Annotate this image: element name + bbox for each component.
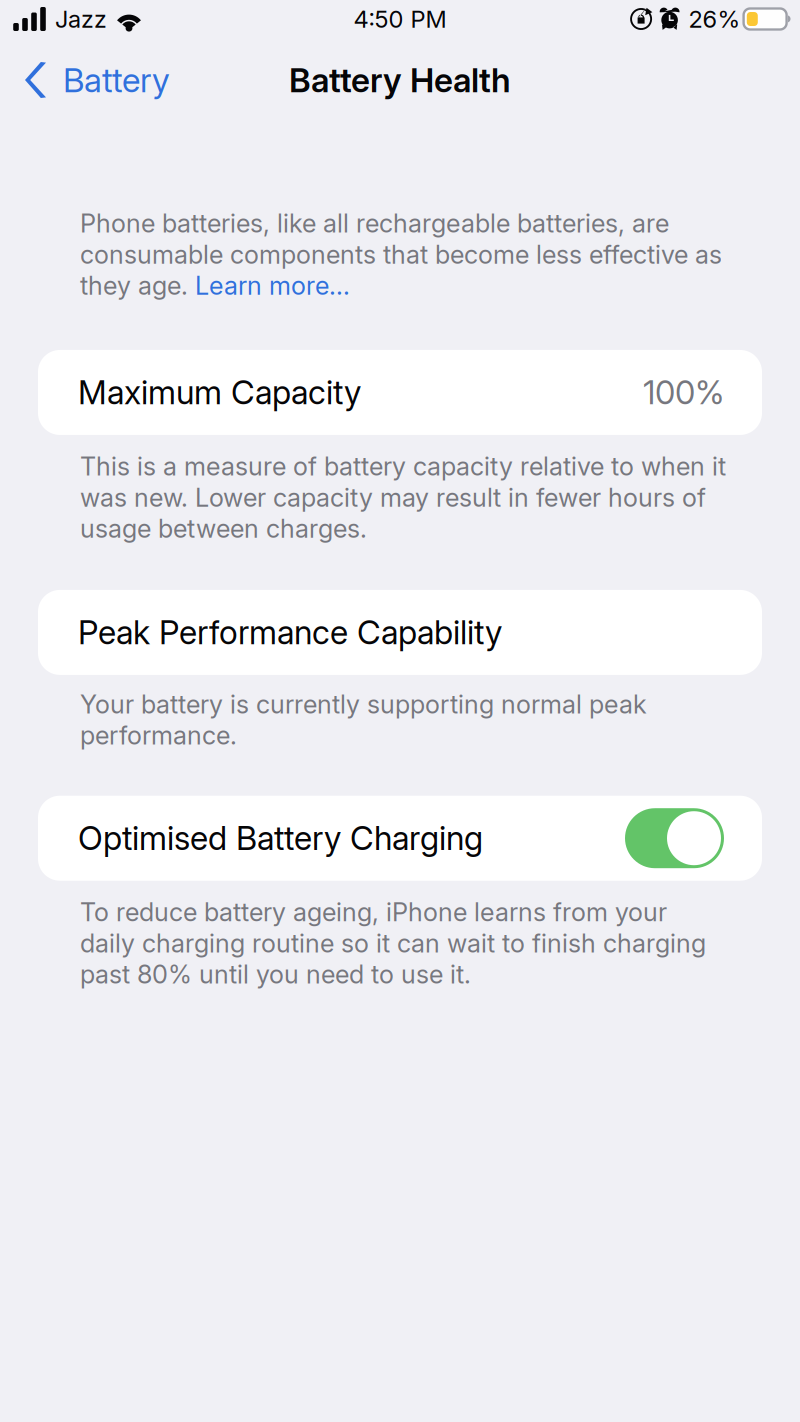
button[interactable]: Peak Performance Capability (0, 590, 800, 675)
staticText: Maximum Capacity (78, 373, 361, 412)
staticText: was new. Lower capacity may result in fe… (80, 482, 706, 513)
staticText: 4:50 PM (353, 5, 446, 33)
staticText: they age. (80, 270, 195, 301)
button[interactable]: Maximum Capacity (0, 350, 800, 435)
button[interactable]: Battery (0, 38, 186, 122)
staticText: Your battery is currently supporting nor… (80, 689, 647, 720)
staticText: To reduce battery ageing, iPhone learns … (80, 897, 667, 927)
staticText: 100% (643, 373, 724, 412)
button[interactable]: Optimised Battery Charging (0, 796, 800, 881)
staticText: This is a measure of battery capacity re… (80, 451, 726, 482)
staticText: Learn more... (195, 270, 350, 301)
staticText: 26% (689, 5, 741, 33)
staticText: Jazz (55, 5, 107, 33)
staticText: daily charging routine so it can wait to… (80, 928, 706, 959)
staticText: Phone batteries, like all rechargeable b… (80, 208, 669, 239)
staticText: consumable components that become less e… (80, 239, 722, 270)
staticText: performance. (80, 720, 237, 751)
staticText: Battery Health (289, 60, 511, 100)
staticText: Optimised Battery Charging (78, 818, 483, 858)
staticText: Peak Performance Capability (78, 613, 502, 652)
staticText: Battery (63, 60, 170, 100)
staticText: past 80% until you need to use it. (80, 959, 471, 990)
staticText: usage between charges. (80, 513, 367, 544)
